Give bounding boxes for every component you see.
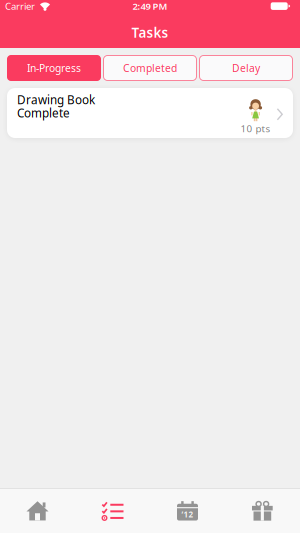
staticText: Delay — [232, 61, 260, 75]
button[interactable]: Drawing Book Complete — [7, 88, 293, 138]
staticText: 10 pts — [241, 122, 271, 135]
staticText: Carrier — [5, 0, 35, 12]
staticText: Completed — [123, 61, 177, 75]
staticText: ’12 — [181, 509, 193, 520]
button[interactable]: Delay — [199, 55, 293, 81]
button[interactable]: In-Progress — [7, 55, 101, 81]
staticText: 2:49 PM — [132, 0, 167, 12]
staticText: Tasks — [131, 24, 168, 41]
button[interactable]: Calendar — [150, 489, 225, 533]
button[interactable]: Home — [0, 489, 75, 533]
staticText: In-Progress — [27, 61, 81, 75]
button[interactable]: Tasks — [75, 489, 150, 533]
button[interactable]: Completed — [103, 55, 197, 81]
staticText: Drawing Book Complete — [17, 93, 95, 120]
button[interactable]: Rewards — [225, 489, 300, 533]
